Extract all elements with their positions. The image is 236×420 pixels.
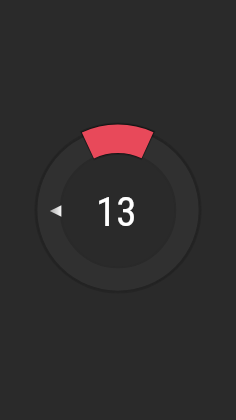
staticText: 13	[96, 188, 137, 236]
button[interactable]: Timer dial	[37, 129, 199, 291]
